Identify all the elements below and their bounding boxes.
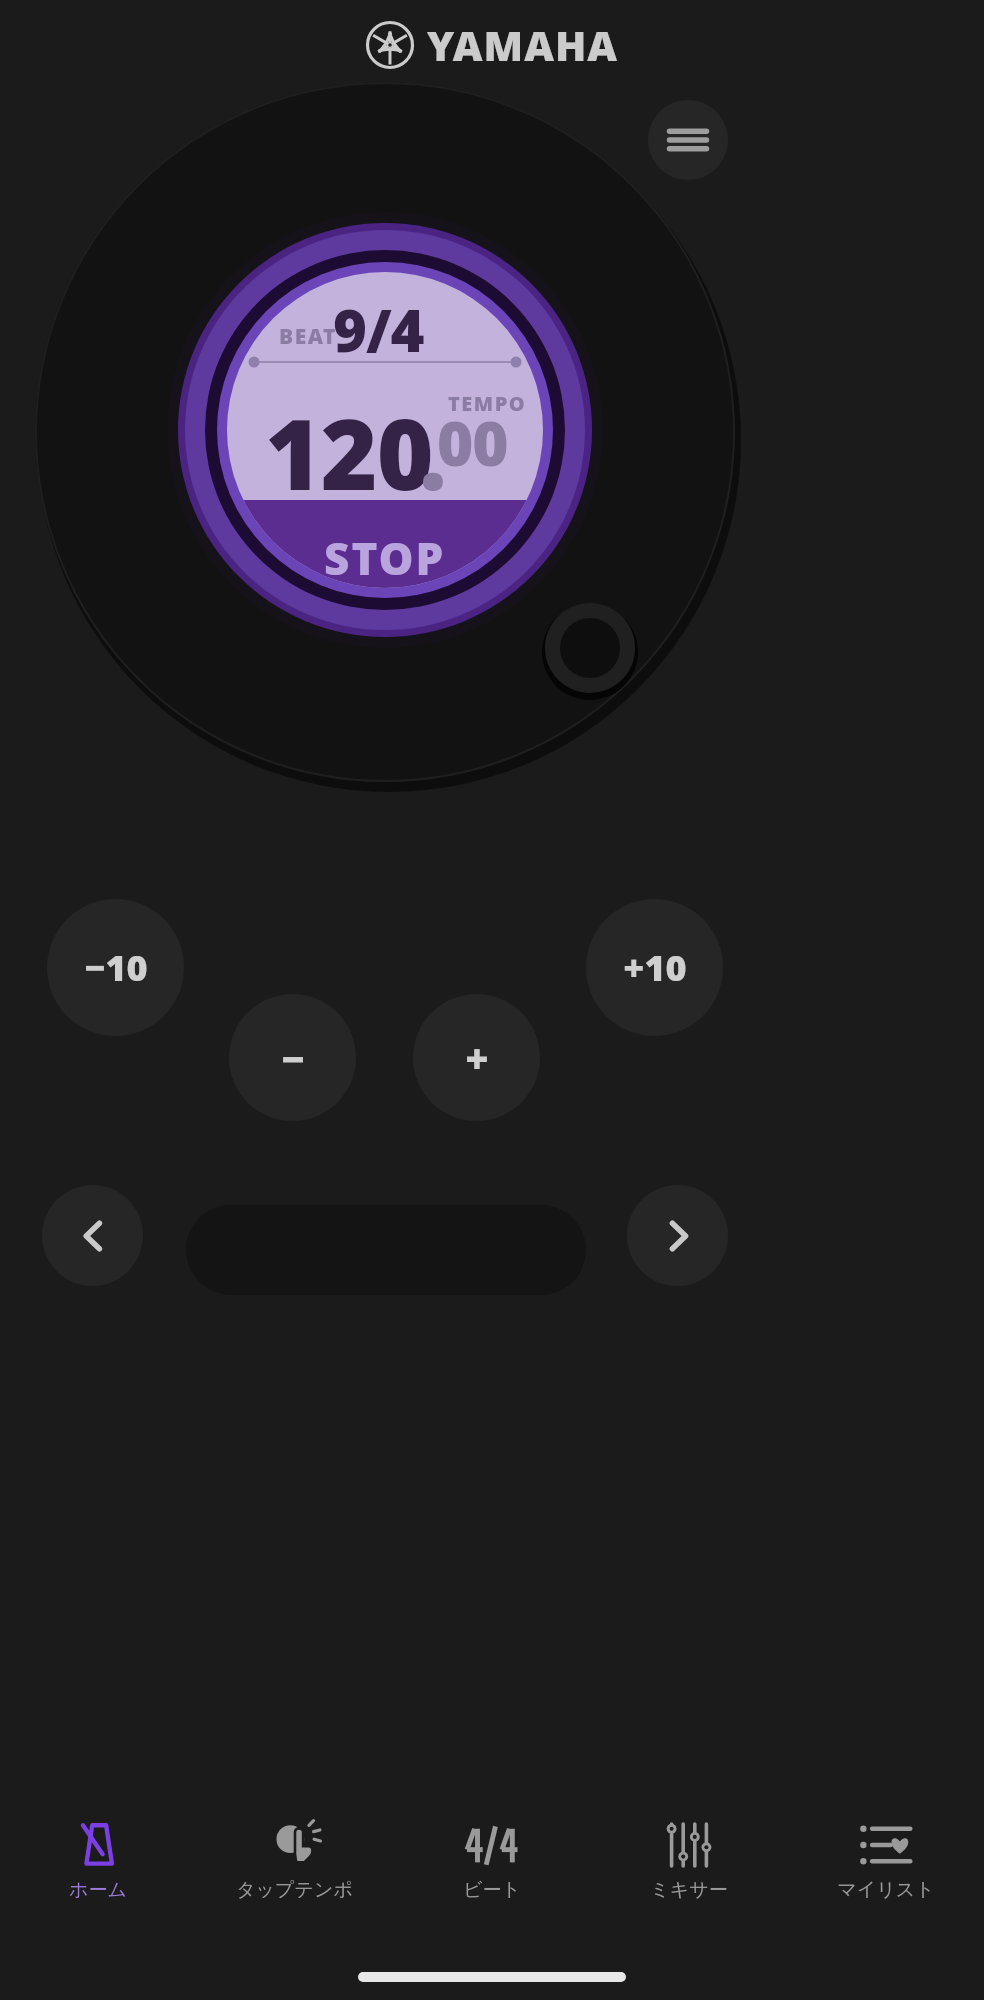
staticText: ビート — [463, 1878, 521, 1902]
staticText: TEMPO — [448, 390, 527, 417]
button[interactable]: Previous — [42, 1185, 143, 1286]
button[interactable]: Decrease tempo — [229, 994, 356, 1121]
button[interactable]: Next — [627, 1185, 728, 1286]
button[interactable]: タップテンポ — [196, 1804, 393, 1914]
button[interactable]: ビート — [393, 1804, 590, 1914]
button[interactable]: Increase tempo by 10 — [586, 899, 723, 1036]
staticText: . — [419, 386, 447, 518]
staticText: + — [465, 1031, 489, 1085]
staticText: タップテンポ — [236, 1878, 353, 1902]
staticText: ミキサー — [650, 1878, 728, 1902]
staticText: −10 — [84, 943, 148, 992]
staticText: STOP — [324, 528, 446, 588]
button[interactable]: Menu — [648, 100, 728, 180]
button[interactable]: マイリスト — [787, 1804, 984, 1914]
staticText: マイリスト — [837, 1878, 935, 1902]
button[interactable]: ホーム — [0, 1804, 196, 1914]
staticText: ホーム — [69, 1878, 127, 1902]
staticText: 9/4 — [333, 290, 424, 369]
staticText: YAMAHA — [427, 17, 619, 73]
staticText: 120 — [265, 386, 433, 518]
staticText: − — [281, 1031, 305, 1085]
button[interactable]: ミキサー — [590, 1804, 787, 1914]
button[interactable]: Decrease tempo by 10 — [47, 899, 184, 1036]
staticText: 00 — [437, 400, 508, 484]
staticText: BEAT — [279, 322, 337, 351]
button[interactable]: Increase tempo — [413, 994, 540, 1121]
button[interactable]: Stop — [228, 500, 542, 616]
staticText: +10 — [623, 943, 687, 992]
